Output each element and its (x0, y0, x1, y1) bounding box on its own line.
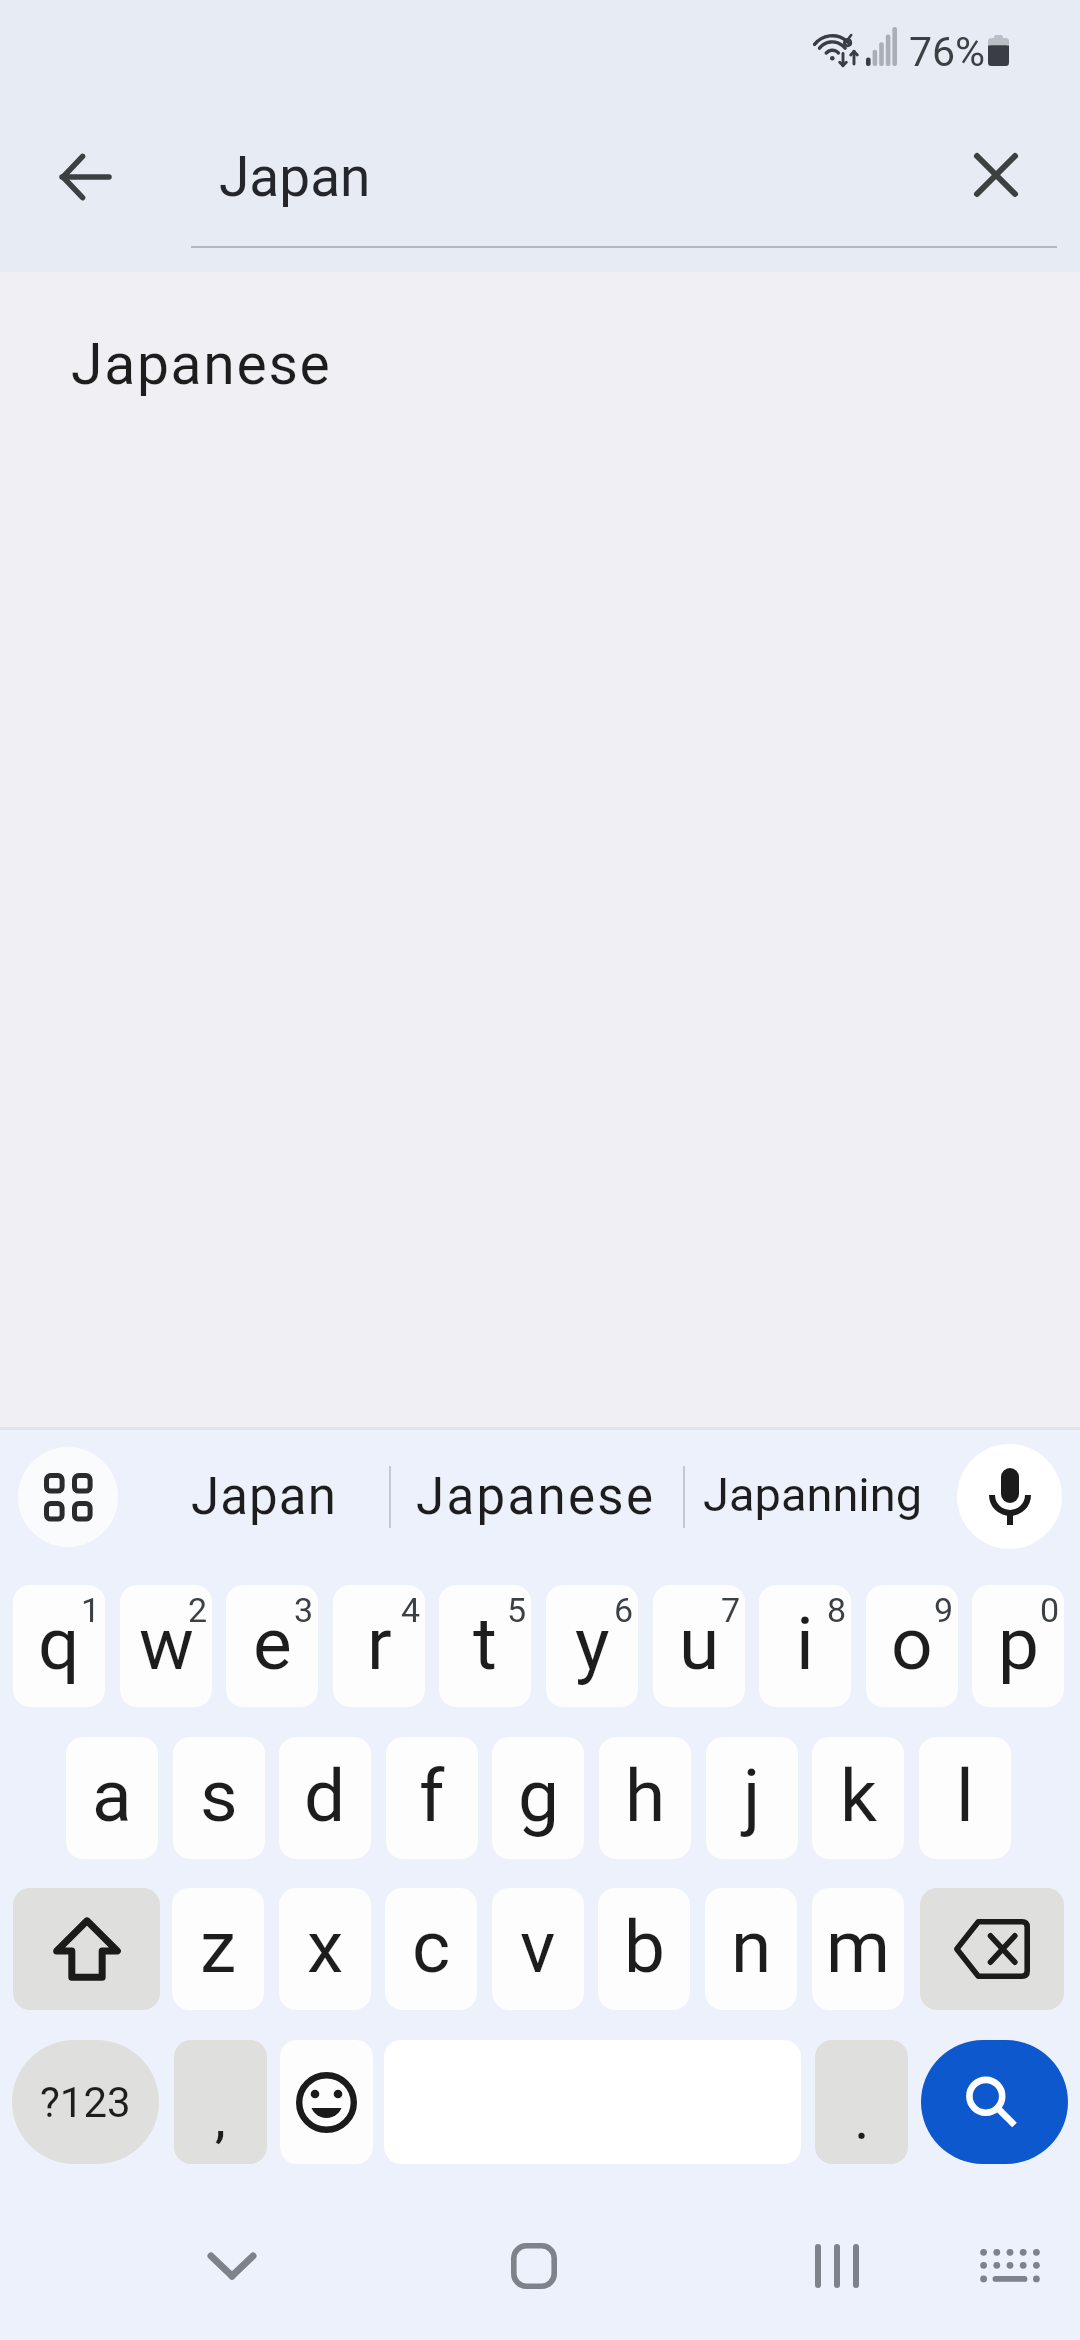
button[interactable]: t (439, 1585, 531, 1707)
button[interactable]: Recent apps (782, 2211, 892, 2321)
staticText: z (200, 1904, 237, 1990)
button[interactable]: l (919, 1737, 1011, 1859)
button[interactable]: Japanning (653, 1442, 973, 1546)
staticText: 4 (401, 1590, 421, 1630)
button[interactable]: g (492, 1737, 584, 1859)
staticText: d (304, 1753, 346, 1839)
staticText: i (796, 1601, 814, 1687)
staticText: r (367, 1601, 392, 1687)
button[interactable]: Voice input (957, 1444, 1062, 1549)
staticText: 8 (827, 1590, 847, 1630)
staticText: Japan (219, 145, 371, 209)
staticText: l (956, 1753, 974, 1839)
button[interactable]: e (226, 1585, 318, 1707)
button[interactable]: y (546, 1585, 638, 1707)
button[interactable]: Shift (13, 1888, 160, 2010)
staticText: k (840, 1753, 877, 1839)
staticText: u (679, 1601, 720, 1687)
button[interactable]: c (385, 1888, 477, 2010)
button[interactable]: Switch keyboard (955, 2211, 1065, 2321)
button[interactable]: a (66, 1737, 158, 1859)
button[interactable]: n (705, 1888, 797, 2010)
staticText: q (38, 1601, 80, 1687)
staticText: 9 (934, 1590, 954, 1630)
button[interactable]: u (653, 1585, 745, 1707)
staticText: n (731, 1904, 772, 1990)
button[interactable]: k (812, 1737, 904, 1859)
button[interactable]: Japan (104, 1445, 424, 1549)
staticText: 7 (721, 1590, 741, 1630)
staticText: . (855, 2094, 869, 2150)
button[interactable]: m (812, 1888, 904, 2010)
button[interactable]: Emoji (280, 2040, 373, 2164)
button[interactable]: i (759, 1585, 851, 1707)
staticText: 1 (81, 1590, 101, 1630)
staticText: c (412, 1904, 451, 1990)
staticText: m (826, 1904, 891, 1990)
button[interactable]: b (598, 1888, 690, 2010)
staticText: j (743, 1753, 761, 1839)
staticText: 6 (614, 1590, 634, 1630)
button[interactable]: z (172, 1888, 264, 2010)
staticText: v (520, 1904, 556, 1990)
staticText: x (307, 1904, 344, 1990)
staticText: w (139, 1601, 194, 1687)
staticText: h (625, 1753, 666, 1839)
button[interactable]: ?123 (12, 2040, 159, 2164)
button[interactable]: q (13, 1585, 105, 1707)
staticText: p (998, 1601, 1039, 1687)
button[interactable]: r (333, 1585, 425, 1707)
button[interactable]: Hide keyboard (177, 2211, 287, 2321)
staticText: Japanese (71, 331, 332, 398)
staticText: 3 (294, 1590, 314, 1630)
staticText: 2 (188, 1590, 208, 1630)
staticText: a (92, 1753, 132, 1839)
button[interactable]: p (972, 1585, 1064, 1707)
button[interactable]: s (173, 1737, 265, 1859)
button[interactable]: d (279, 1737, 371, 1859)
button[interactable]: f (386, 1737, 478, 1859)
staticText: e (253, 1601, 292, 1687)
button[interactable]: Comma (174, 2040, 267, 2164)
staticText: o (891, 1601, 933, 1687)
staticText: , (215, 2092, 226, 2148)
staticText: s (200, 1753, 238, 1839)
staticText: 76% (909, 28, 986, 76)
button[interactable]: Back (30, 122, 140, 232)
button[interactable]: j (706, 1737, 798, 1859)
button[interactable]: Clear search (941, 120, 1051, 230)
staticText: Japan (191, 1467, 337, 1527)
staticText: 0 (1040, 1590, 1060, 1630)
button[interactable]: v (492, 1888, 584, 2010)
button[interactable]: Keyboard toolbar (18, 1447, 118, 1547)
staticText: Japanning (703, 1467, 923, 1522)
button[interactable]: Search (921, 2040, 1068, 2164)
staticText: ?123 (40, 2078, 131, 2127)
staticText: y (575, 1601, 610, 1687)
staticText: 5 (507, 1590, 527, 1630)
button[interactable]: Japanese (376, 1445, 696, 1549)
button[interactable]: w (120, 1585, 212, 1707)
button[interactable]: Home (479, 2211, 589, 2321)
staticText: t (473, 1601, 497, 1687)
staticText: f (419, 1753, 445, 1839)
staticText: b (624, 1904, 665, 1990)
button[interactable]: o (866, 1585, 958, 1707)
button[interactable]: h (599, 1737, 691, 1859)
button[interactable]: Backspace (920, 1888, 1064, 2010)
staticText: Japanese (416, 1467, 656, 1527)
button[interactable]: Period (815, 2040, 908, 2164)
button[interactable]: x (279, 1888, 371, 2010)
staticText: g (518, 1753, 559, 1839)
